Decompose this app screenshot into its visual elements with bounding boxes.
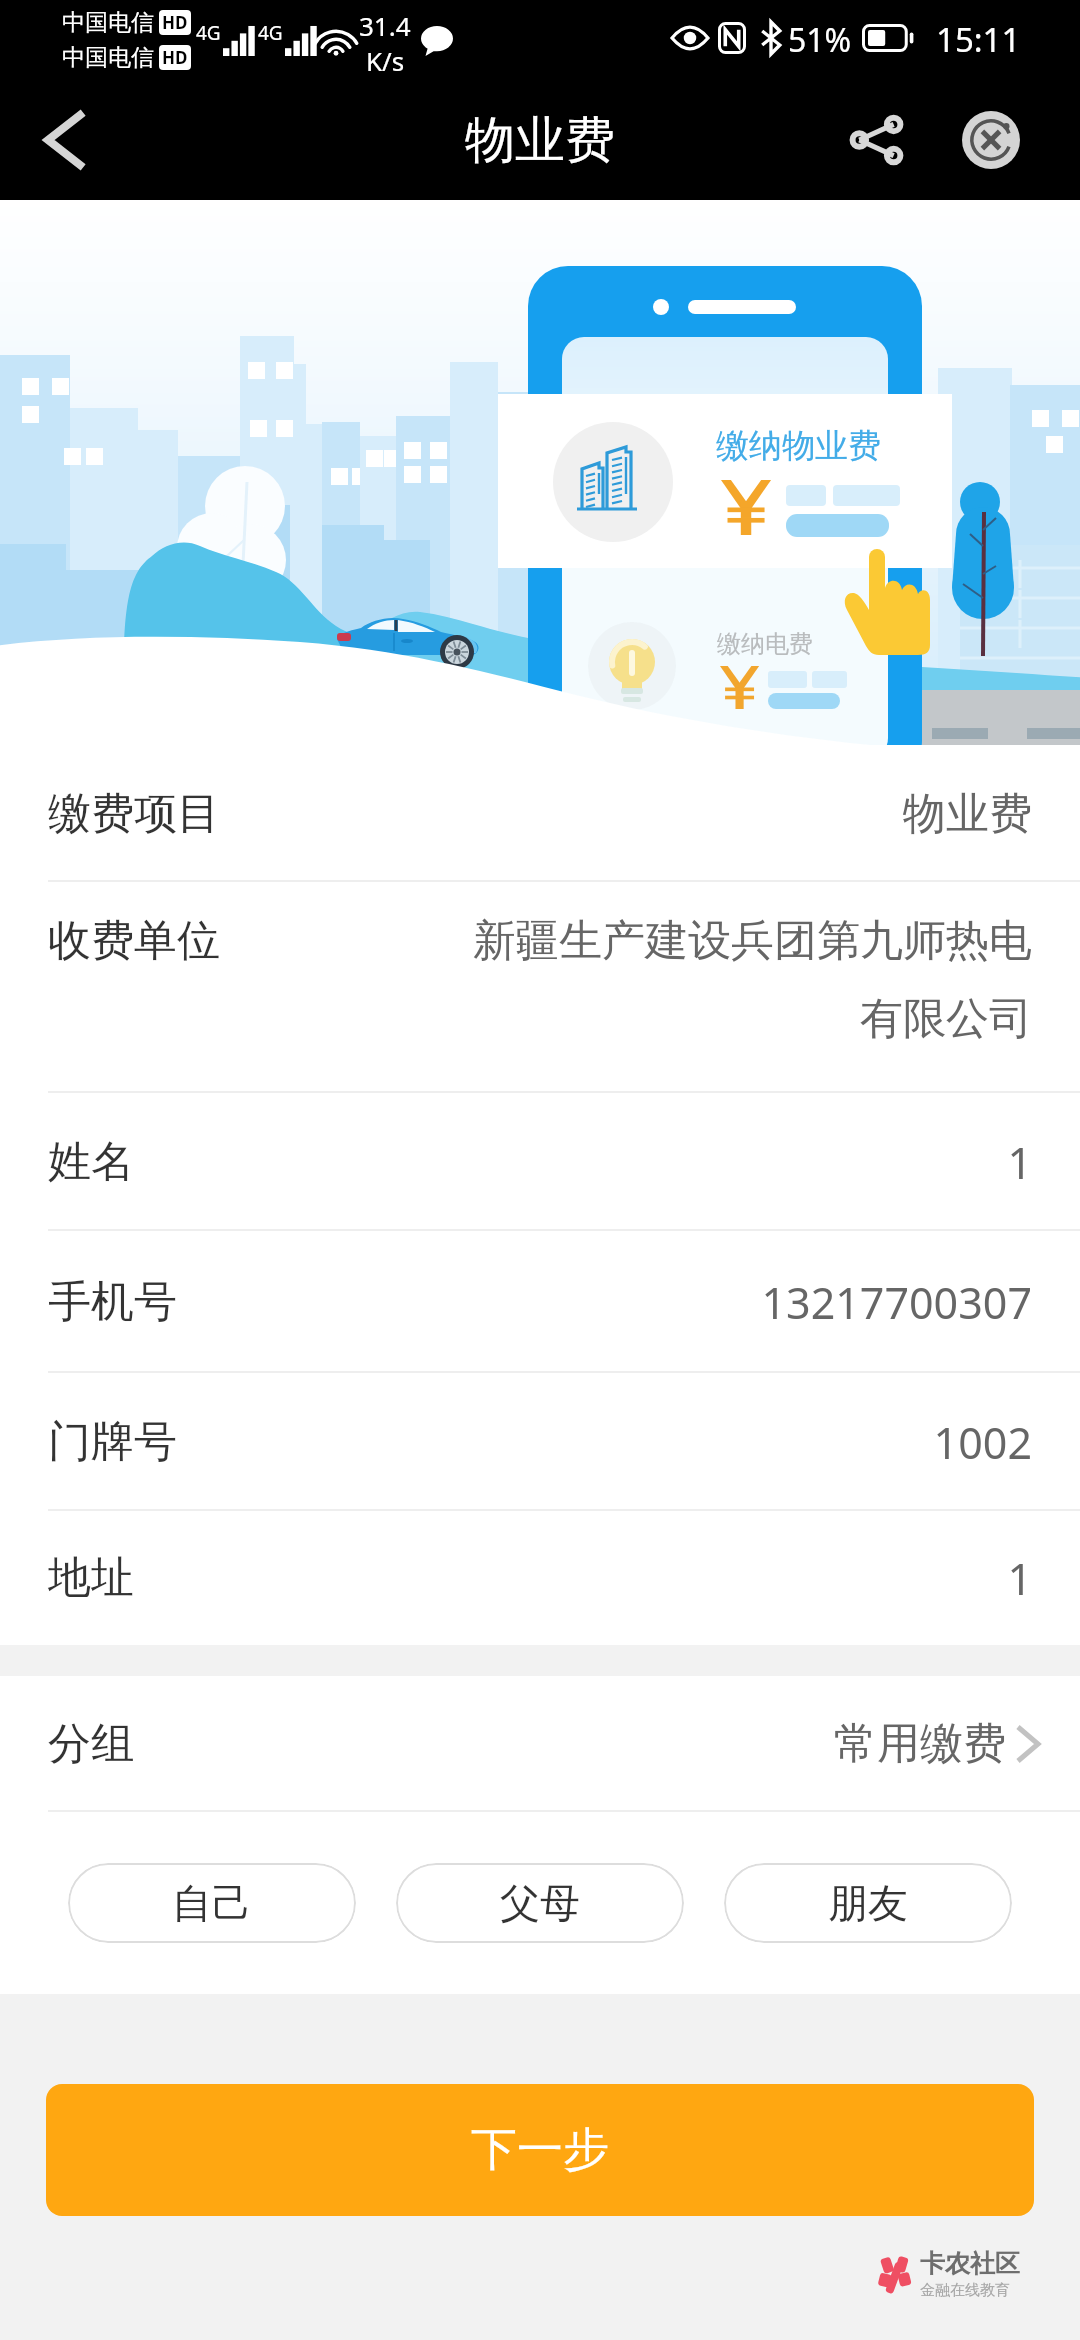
staticText: 姓名 [48, 1135, 134, 1189]
button[interactable]: 缴费项目 [0, 745, 1080, 882]
staticText: 中国电信 [62, 43, 154, 72]
button[interactable]: 下一步 [46, 2084, 1034, 2216]
staticText: HD [162, 11, 188, 34]
staticText: 31.4 [359, 8, 411, 43]
button[interactable]: 自己 [68, 1863, 356, 1943]
button[interactable]: 分组 [0, 1676, 1080, 1812]
button[interactable]: 朋友 [724, 1863, 1012, 1943]
staticText: 物业费 [244, 787, 1032, 841]
staticText: 金融在线教育 [920, 2281, 1010, 2300]
staticText: 缴纳物业费 [716, 425, 881, 467]
staticText: 1 [158, 1133, 1032, 1192]
staticText: 缴纳电费 [717, 629, 813, 659]
staticText: 下一步 [471, 2121, 609, 2179]
staticText: 新疆生产建设兵团第九师热电 有限公司 [244, 914, 1032, 1046]
staticText: 自己 [172, 1878, 252, 1928]
staticText: 父母 [500, 1878, 580, 1928]
button[interactable]: 收费单位 [0, 882, 1080, 1093]
button[interactable]: Share [834, 97, 920, 183]
button[interactable]: 手机号 [0, 1231, 1080, 1373]
staticText: 收费单位 [48, 914, 220, 968]
staticText: 4G [258, 20, 283, 46]
button[interactable]: 地址 [0, 1511, 1080, 1645]
staticText: 分组 [48, 1717, 134, 1771]
staticText: 中国电信 [62, 8, 154, 37]
staticText: 4G [196, 20, 221, 46]
staticText: 门牌号 [48, 1415, 177, 1469]
staticText: 常用缴费 [834, 1717, 1006, 1771]
staticText: 朋友 [828, 1878, 908, 1928]
button[interactable]: 门牌号 [0, 1373, 1080, 1511]
staticText: 手机号 [48, 1275, 177, 1329]
button[interactable]: 姓名 [0, 1093, 1080, 1231]
staticText: HD [162, 46, 188, 69]
staticText: 1 [158, 1549, 1032, 1608]
button[interactable]: 父母 [396, 1863, 684, 1943]
staticText: 卡农社区 [920, 2248, 1020, 2279]
staticText: 1002 [201, 1413, 1032, 1472]
staticText: K/s [366, 43, 405, 78]
staticText: 地址 [48, 1551, 134, 1605]
button[interactable]: Back [20, 96, 108, 184]
staticText: 13217700307 [201, 1273, 1032, 1332]
button[interactable]: Close [948, 97, 1034, 183]
staticText: 51% [788, 18, 852, 62]
staticText: 缴费项目 [48, 787, 220, 841]
staticText: 15:11 [936, 17, 1021, 62]
staticText: 物业费 [465, 109, 615, 172]
